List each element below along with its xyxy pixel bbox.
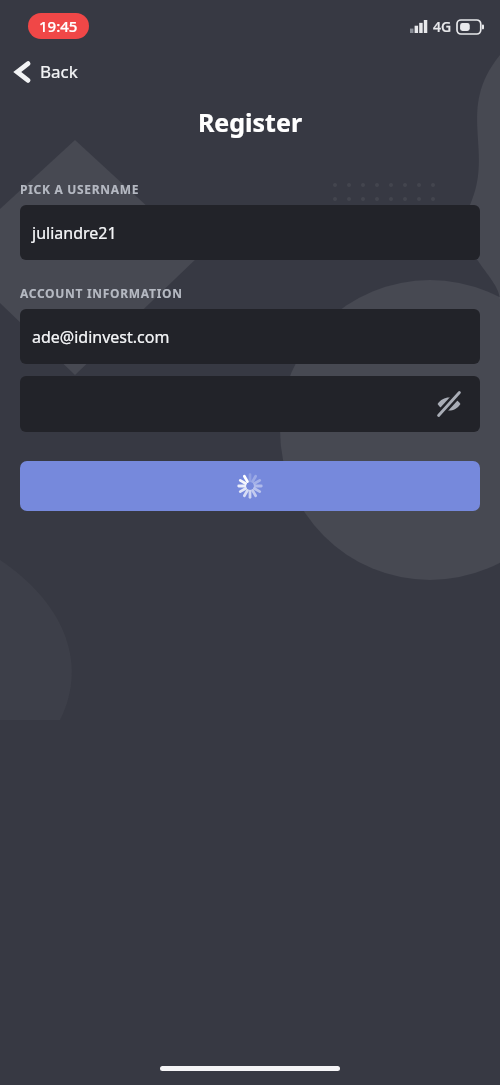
button[interactable]: ade@idinvest.com <box>20 309 480 364</box>
staticText: Back <box>40 60 78 83</box>
staticText: juliandre21 <box>32 222 117 244</box>
button[interactable]: Show password <box>434 389 464 419</box>
button[interactable]: juliandre21 <box>20 205 480 260</box>
staticText: PICK A USERNAME <box>20 181 140 197</box>
button[interactable]: Registering, please wait <box>20 461 480 511</box>
staticText: Register <box>0 105 500 139</box>
staticText: ACCOUNT INFORMATION <box>20 285 183 301</box>
staticText: ade@idinvest.com <box>32 326 170 348</box>
staticText: 4G <box>433 17 452 36</box>
button[interactable]: Show password <box>20 376 480 432</box>
button[interactable]: Back <box>0 52 98 91</box>
staticText: 19:45 <box>39 16 78 36</box>
